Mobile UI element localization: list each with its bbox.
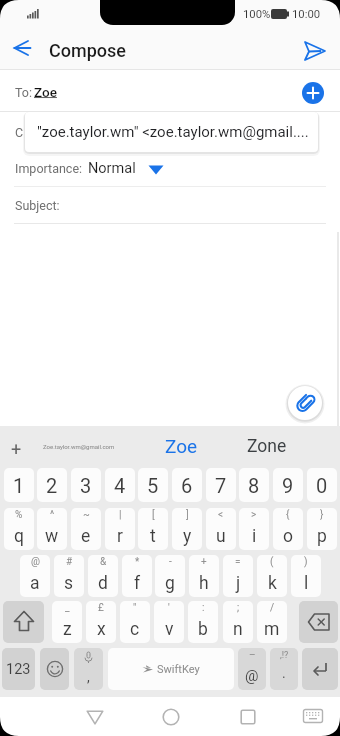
button[interactable] [302,648,338,690]
button[interactable]: # [54,555,84,597]
staticText: k [268,573,277,594]
button[interactable]: 8 [239,468,269,502]
button[interactable]: 4 [105,468,135,502]
button[interactable] [302,82,324,104]
button[interactable]: ^ [37,508,67,550]
staticText: r [117,526,123,547]
staticText: q [14,526,24,547]
staticText: – [249,649,256,661]
staticText: - [169,556,172,568]
staticText: l [304,573,309,594]
button[interactable]: 3 [71,468,101,502]
button[interactable]: SwiftKey [108,648,234,690]
button[interactable] [232,702,263,732]
button[interactable]: = [223,555,253,597]
button[interactable]: ,!? [270,648,298,690]
button[interactable]: ; [223,601,253,643]
staticText: 10:00 [292,8,321,21]
button[interactable]: , [74,648,103,690]
staticText: j [236,573,241,594]
button[interactable]: ~ [71,508,101,550]
button[interactable]: 9 [273,468,303,502]
staticText: ^ [50,509,55,521]
staticText: < [218,509,224,521]
button[interactable] [288,386,322,420]
staticText: ,!? [280,650,289,661]
button[interactable]: % [4,508,34,550]
button[interactable]: 2 [37,468,67,502]
button[interactable]: _ [52,601,82,643]
staticText: b [198,619,208,640]
staticText: 3 [80,474,92,497]
staticText: ~ [83,509,90,521]
staticText: / [270,602,275,614]
button[interactable]: + [189,555,219,597]
staticText: "zoe.taylor.wm" <zoe.taylor.wm@gmail.... [37,123,309,141]
button[interactable]: & [88,555,118,597]
staticText: Zone [247,436,287,457]
button[interactable]: 0 [307,468,337,502]
button[interactable]: 6 [172,468,202,502]
button[interactable]: ' [154,601,184,643]
staticText: Normal [88,160,136,177]
staticText: Zoe [34,84,57,100]
staticText: x [97,619,106,640]
button[interactable]: / [257,601,287,643]
button[interactable] [299,601,338,643]
staticText: 8 [248,474,260,497]
button[interactable] [148,165,164,175]
button[interactable]: Zoe.taylor.wm@gmail.com [34,426,124,466]
button[interactable]: 5 [138,468,168,502]
button[interactable] [298,701,328,731]
staticText: ) [304,556,308,568]
button[interactable]: { [273,508,303,550]
button[interactable]: "zoe.taylor.wm" <zoe.taylor.wm@gmail.... [25,112,318,152]
staticText: w [45,526,59,547]
button[interactable] [3,601,44,643]
button[interactable]: Zone [227,426,307,466]
button[interactable]: @ [20,555,50,597]
button[interactable] [6,32,38,64]
button[interactable] [155,702,186,732]
staticText: " [133,602,137,614]
button[interactable] [298,36,330,66]
staticText: y [183,526,192,547]
button[interactable]: 1 [4,468,34,502]
button[interactable]: " [120,601,150,643]
button[interactable] [79,702,110,732]
staticText: 123 [6,661,31,678]
staticText: | [119,509,122,521]
button[interactable]: | [105,508,135,550]
button[interactable]: To: [0,70,340,112]
button[interactable]: [ [138,508,168,550]
button[interactable]: £ [86,601,116,643]
button[interactable]: * [122,555,152,597]
staticText: 5 [147,474,159,497]
button[interactable]: ( [257,555,287,597]
button[interactable]: - [155,555,185,597]
button[interactable]: – [238,648,266,690]
staticText: z [63,619,72,640]
button[interactable]: } [307,508,337,550]
staticText: n [233,619,243,640]
button[interactable]: Subject: [0,187,340,223]
staticText: * [135,556,140,568]
staticText: g [165,573,175,594]
button[interactable]: 123 [2,648,35,690]
staticText: To: [15,85,33,100]
button[interactable]: ] [172,508,202,550]
staticText: 100% [243,8,271,21]
button[interactable]: 7 [206,468,236,502]
staticText: t [150,526,156,547]
staticText: ' [168,602,170,614]
staticText: + [201,556,207,568]
button[interactable]: < [206,508,236,550]
button[interactable] [40,648,69,690]
staticText: ( [270,556,274,568]
staticText: Zoe.taylor.wm@gmail.com [43,443,115,450]
button[interactable]: + [11,438,22,459]
button[interactable]: : [188,601,218,643]
button[interactable]: Zoe [138,426,224,466]
button[interactable]: > [239,508,269,550]
button[interactable]: ) [291,555,321,597]
